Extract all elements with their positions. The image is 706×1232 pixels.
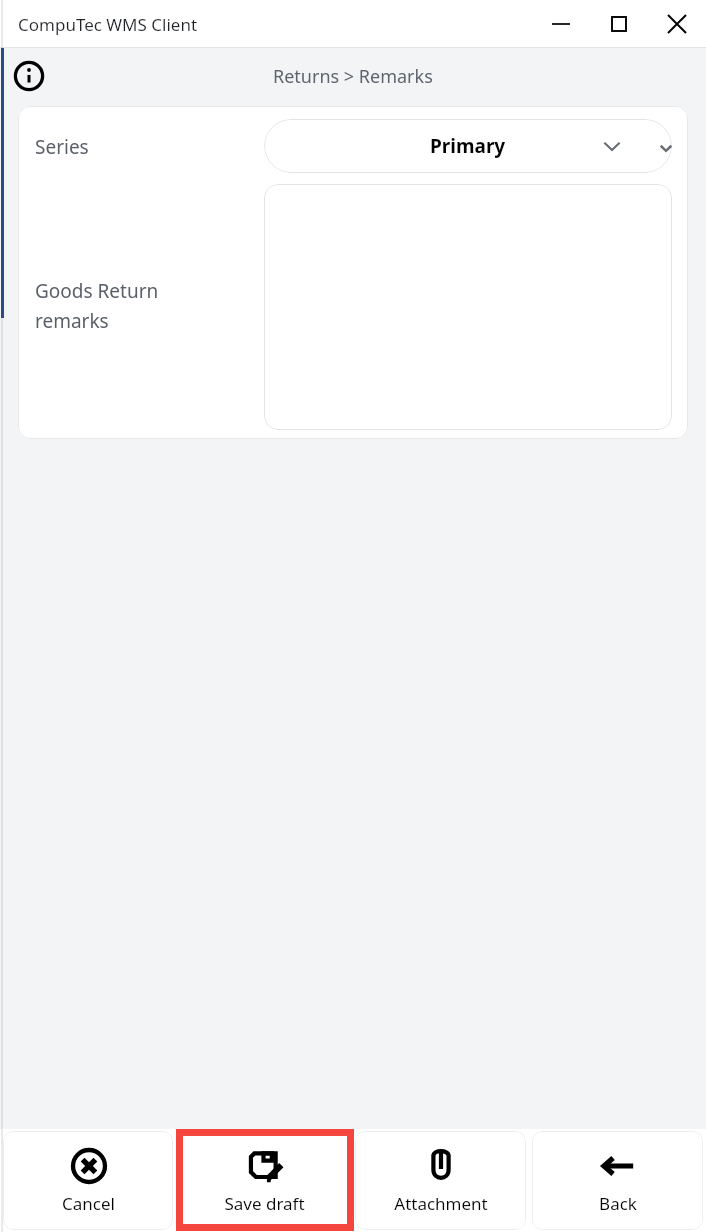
button[interactable]: Primary — [264, 119, 672, 173]
staticText: Returns > Remarks — [273, 64, 433, 89]
staticText: Series — [35, 134, 89, 160]
button[interactable]: Attachment — [355, 1131, 526, 1230]
button[interactable]: Cancel — [3, 1131, 173, 1230]
button[interactable]: Maximize — [590, 2, 648, 46]
button[interactable]: Goods Return remarks input — [264, 184, 672, 430]
button[interactable]: Expand list — [653, 135, 679, 161]
staticText: Primary — [430, 133, 506, 159]
button[interactable]: Minimize — [532, 2, 590, 46]
staticText: Back — [599, 1192, 637, 1215]
staticText: Save draft — [224, 1192, 305, 1215]
staticText: CompuTec WMS Client — [18, 13, 198, 36]
staticText: Goods Return — [35, 278, 159, 304]
button[interactable]: Save draft — [179, 1131, 349, 1230]
staticText: Attachment — [394, 1192, 488, 1215]
button[interactable]: Close — [648, 2, 706, 46]
staticText: Cancel — [62, 1192, 115, 1215]
button[interactable]: Info — [9, 56, 49, 96]
button[interactable]: Back — [532, 1131, 703, 1230]
staticText: remarks — [35, 308, 109, 334]
